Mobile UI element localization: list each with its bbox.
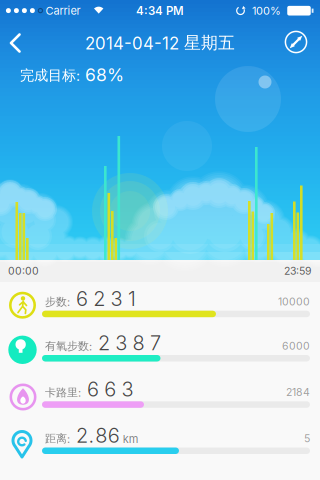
staticText: .: [89, 423, 95, 448]
staticText: 2184: [286, 386, 310, 399]
staticText: 100%: [252, 4, 281, 17]
staticText: 6: [108, 423, 120, 448]
staticText: 6: [104, 377, 116, 401]
staticText: 3: [115, 331, 127, 355]
staticText: 68%: [85, 64, 124, 86]
staticText: 步数:: [45, 295, 70, 309]
staticText: 7: [150, 331, 161, 355]
button[interactable]: Back: [2, 21, 38, 65]
staticText: 4:34 PM: [136, 4, 184, 18]
staticText: 完成目标:: [20, 67, 80, 85]
staticText: 6000: [282, 340, 310, 352]
staticText: 有氧步数:: [45, 339, 92, 353]
staticText: 00:00: [8, 265, 39, 277]
staticText: 2: [76, 423, 88, 448]
staticText: 23:59: [284, 265, 312, 277]
staticText: 6: [76, 287, 88, 311]
staticText: 8: [95, 423, 107, 448]
staticText: 2014-04-12 星期五: [85, 32, 235, 54]
staticText: 8: [133, 331, 145, 355]
staticText: km: [123, 432, 139, 446]
staticText: 6: [87, 377, 99, 401]
staticText: 卡路里:: [45, 385, 81, 399]
button[interactable]: Edit goal: [274, 20, 318, 64]
staticText: 3: [111, 287, 123, 311]
staticText: 1: [128, 287, 136, 311]
staticText: Carrier: [45, 4, 80, 17]
staticText: 距离:: [45, 432, 70, 446]
staticText: 2: [98, 331, 110, 355]
staticText: 2: [93, 287, 105, 311]
staticText: 5: [304, 432, 310, 445]
staticText: 3: [122, 377, 134, 401]
staticText: 10000: [278, 295, 310, 308]
